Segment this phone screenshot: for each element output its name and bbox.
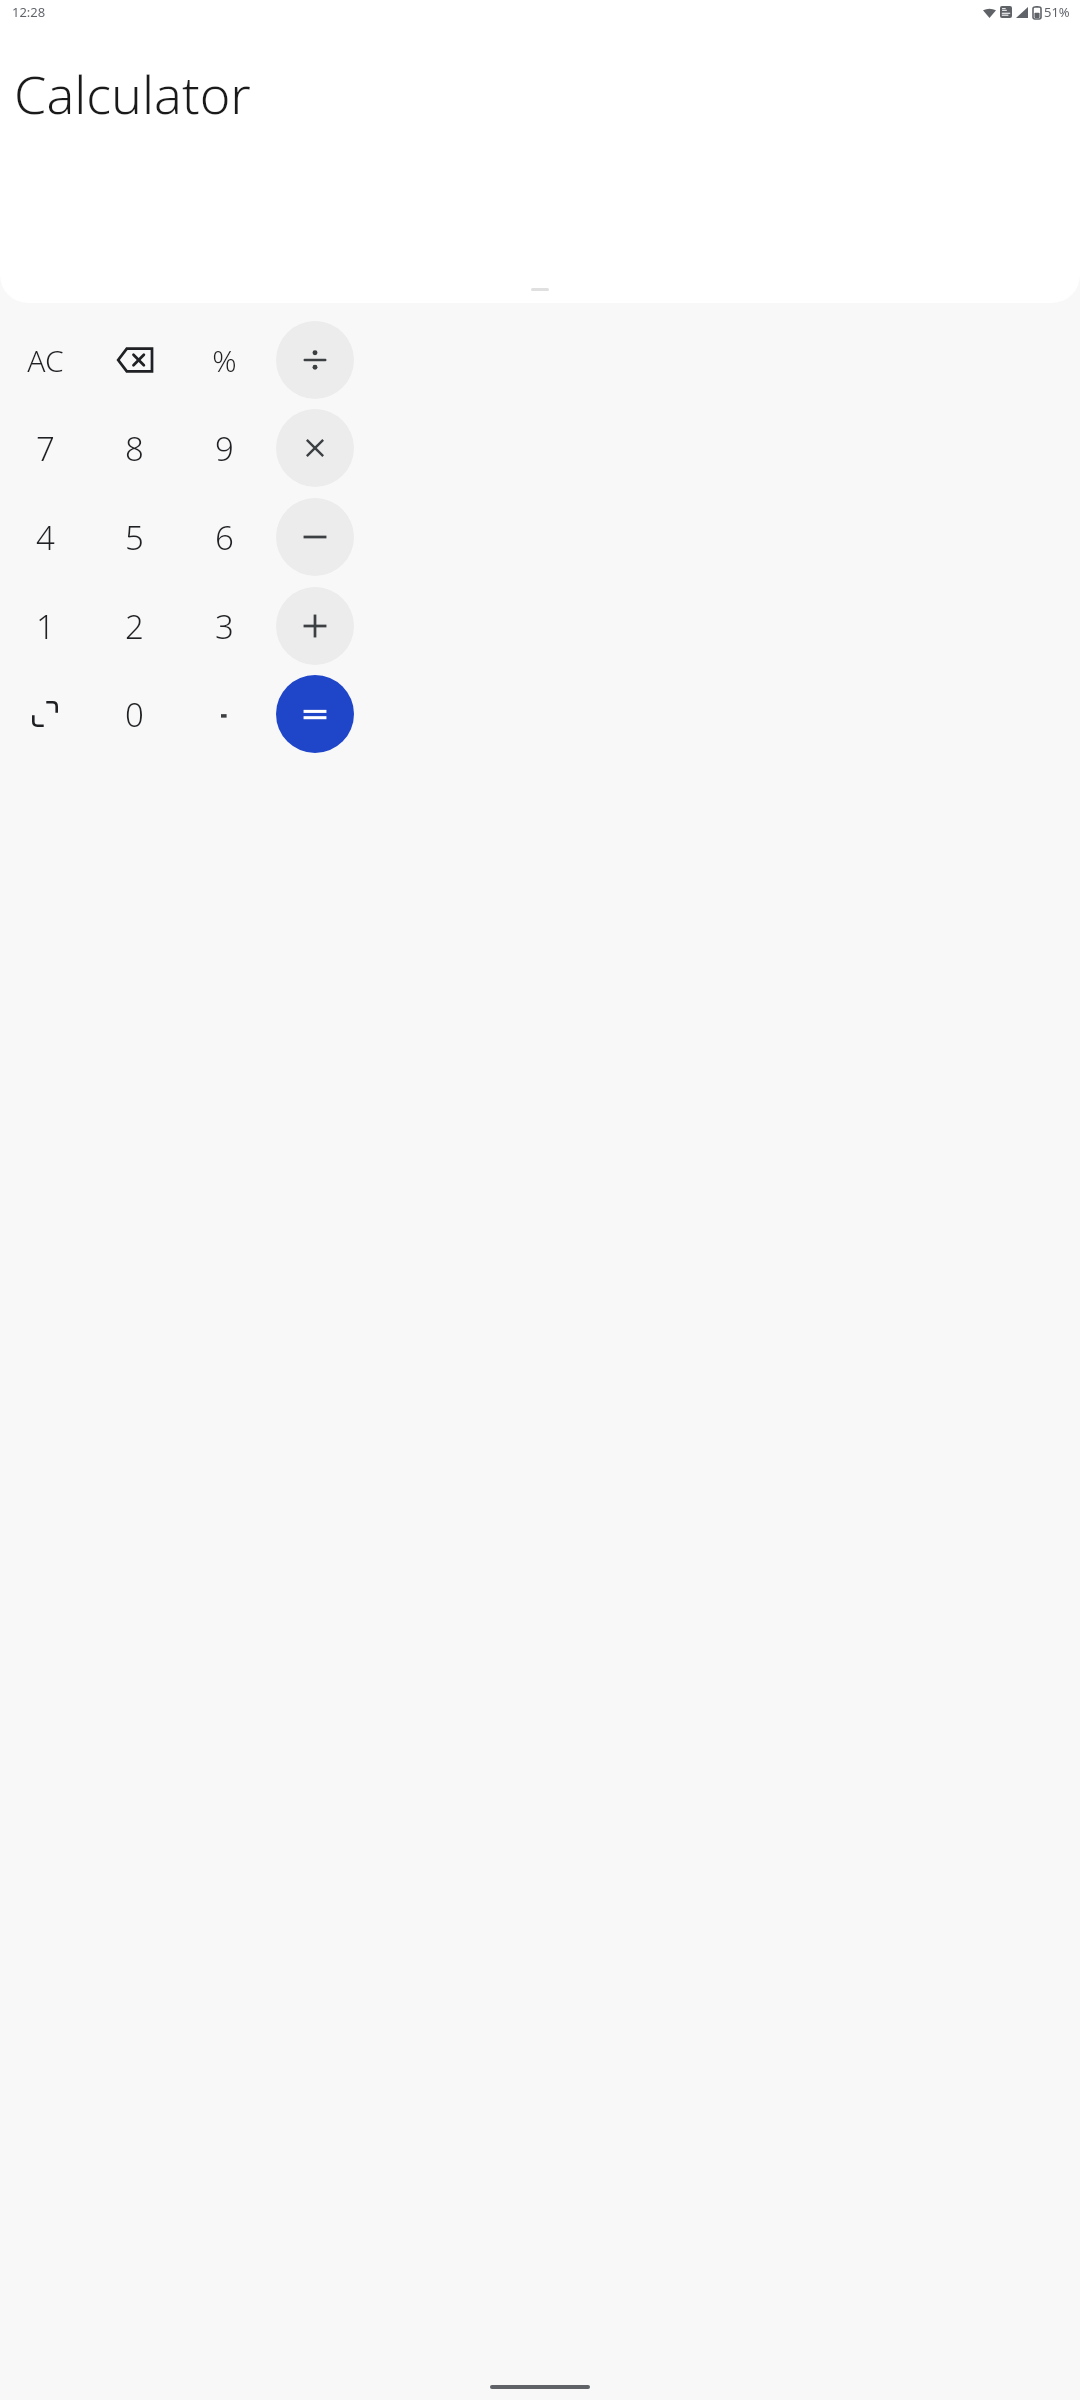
staticText: 1 bbox=[36, 604, 55, 649]
button[interactable]: 9 bbox=[185, 409, 263, 487]
button[interactable]: Decimal point bbox=[185, 675, 263, 753]
button[interactable]: 3 bbox=[185, 587, 263, 665]
staticText: 5 bbox=[125, 515, 144, 560]
staticText: 9 bbox=[215, 426, 234, 471]
button[interactable]: % bbox=[185, 321, 263, 399]
staticText: 6 bbox=[215, 515, 234, 560]
button[interactable]: 8 bbox=[95, 409, 173, 487]
button[interactable]: AC bbox=[6, 321, 84, 399]
button[interactable]: Minus bbox=[276, 498, 354, 576]
staticText: 12:28 bbox=[12, 3, 46, 21]
button[interactable]: Divide bbox=[276, 321, 354, 399]
staticText: 3 bbox=[215, 604, 234, 649]
button[interactable]: Multiply bbox=[276, 409, 354, 487]
button[interactable]: 6 bbox=[185, 498, 263, 576]
staticText: 8 bbox=[125, 426, 144, 471]
button[interactable]: 5 bbox=[95, 498, 173, 576]
button[interactable]: Backspace bbox=[95, 321, 173, 399]
button[interactable]: 7 bbox=[6, 409, 84, 487]
staticText: 0 bbox=[125, 692, 144, 737]
button[interactable]: 4 bbox=[6, 498, 84, 576]
button[interactable]: 2 bbox=[95, 587, 173, 665]
button[interactable]: Equals bbox=[276, 675, 354, 753]
staticText: AC bbox=[27, 340, 64, 381]
button[interactable]: Plus bbox=[276, 587, 354, 665]
staticText: 2 bbox=[125, 604, 144, 649]
button[interactable]: Expand bbox=[6, 675, 84, 753]
button[interactable]: 1 bbox=[6, 587, 84, 665]
staticText: Calculator bbox=[14, 58, 251, 129]
button[interactable]: 0 bbox=[95, 675, 173, 753]
staticText: 7 bbox=[36, 426, 55, 471]
staticText: 51% bbox=[1044, 3, 1070, 21]
staticText: % bbox=[212, 340, 237, 381]
staticText: 4 bbox=[36, 515, 55, 560]
